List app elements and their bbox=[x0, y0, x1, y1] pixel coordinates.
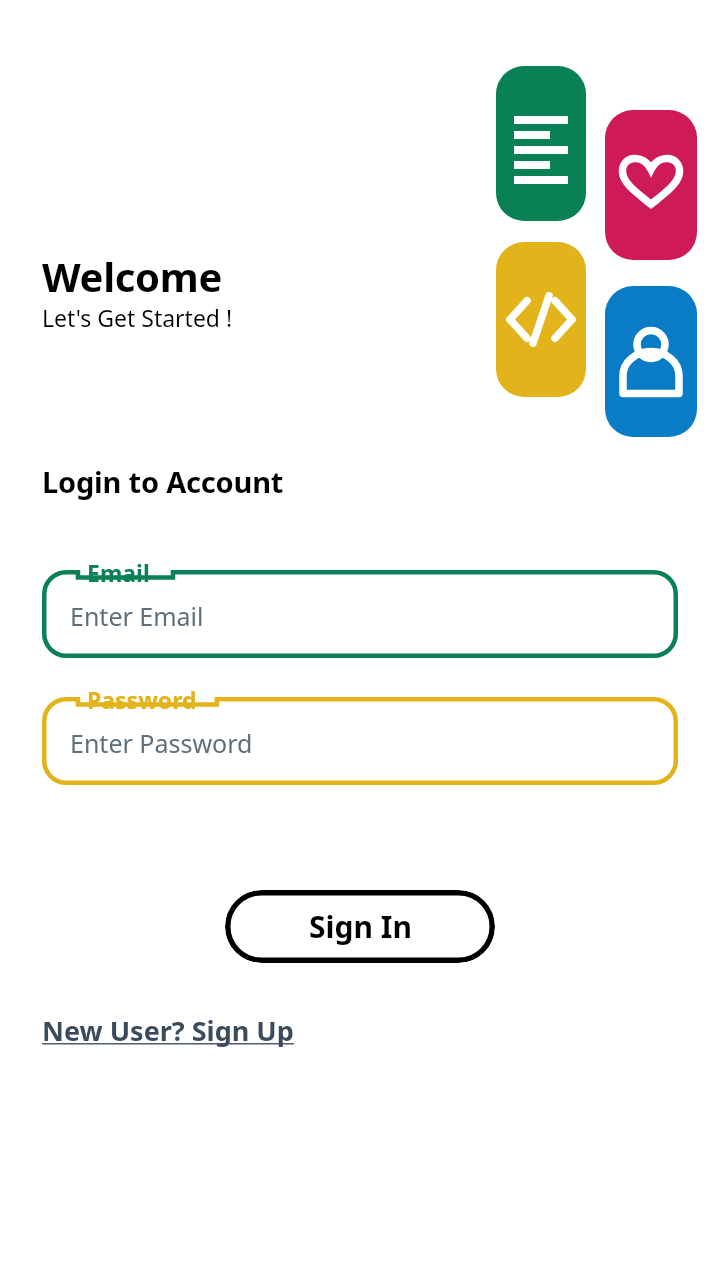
staticText: Welcome bbox=[42, 249, 223, 303]
staticText: Let's Get Started ! bbox=[42, 302, 233, 333]
button[interactable]: Favorites bbox=[605, 110, 697, 260]
staticText: New User? Sign Up bbox=[42, 1012, 294, 1049]
staticText: Password bbox=[87, 684, 197, 715]
button[interactable]: Articles bbox=[496, 66, 586, 221]
button[interactable]: Profile bbox=[605, 286, 697, 437]
staticText: Login to Account bbox=[42, 462, 284, 501]
staticText: Email bbox=[87, 557, 150, 588]
staticText: Enter Password bbox=[70, 726, 253, 760]
button[interactable]: New User? Sign Up bbox=[42, 1012, 294, 1049]
staticText: Sign In bbox=[309, 906, 412, 947]
button[interactable]: Email bbox=[42, 570, 678, 658]
button[interactable]: Sign In bbox=[225, 890, 495, 963]
staticText: Enter Email bbox=[70, 599, 204, 633]
button[interactable]: Code bbox=[496, 242, 586, 397]
button[interactable]: Password bbox=[42, 697, 678, 785]
